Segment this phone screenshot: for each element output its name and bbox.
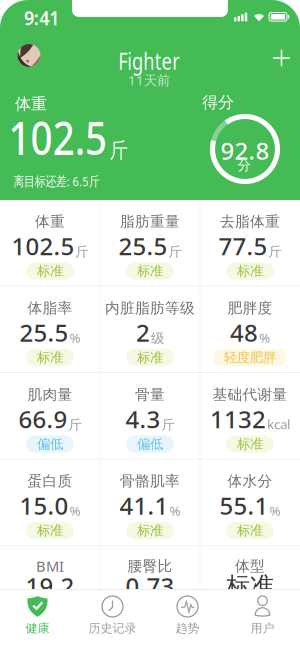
staticText: 斤 [75,244,88,260]
staticText: 历史记录 [88,621,136,636]
staticText: 肌肉量 [27,385,72,403]
staticText: 标准 [237,436,263,452]
button[interactable]: 肌肉量 [0,373,100,459]
button[interactable]: 蛋白质 [0,459,100,546]
button[interactable]: 用户 [225,589,300,650]
staticText: 斤 [161,417,174,433]
button[interactable]: 腰臀比 [100,546,200,650]
staticText: 斤 [168,244,181,260]
staticText: 9:41 [22,4,61,31]
staticText: 偏低 [37,436,63,452]
staticText: 骨量 [135,385,165,403]
staticText: 标准 [37,522,63,539]
staticText: 标准 [226,571,274,601]
button[interactable]: 去脂体重 [200,200,300,286]
staticText: 用户 [250,621,274,636]
staticText: 15.0 [19,490,68,521]
staticText: 4.3 [125,403,160,435]
staticText: 25.5 [118,230,167,262]
staticText: 55.1 [219,490,268,521]
staticText: 体重 [15,94,47,114]
staticText: BMI [36,556,64,576]
staticText: 分 [237,157,250,174]
staticText: 轻度肥胖 [224,349,276,366]
button[interactable]: 体水分 [200,459,300,546]
button[interactable]: 健康 [0,589,75,650]
button[interactable]: 体重 [0,200,100,286]
staticText: % [169,502,180,519]
staticText: 体水分 [227,472,272,490]
staticText: 骨骼肌率 [120,472,180,490]
staticText: 斤 [68,417,81,433]
staticText: 标准 [237,522,263,539]
staticText: 去脂体重 [220,212,280,230]
staticText: 得分 [202,93,234,112]
staticText: kcal [267,415,290,433]
button[interactable]: 肥胖度 [200,286,300,373]
staticText: 102.5 [11,230,74,262]
staticText: 标准 [137,263,163,279]
button[interactable] [17,44,40,67]
staticText: 标准 [37,349,63,366]
button[interactable]: 内脏脂肪等级 [100,286,200,373]
button[interactable]: BMI [0,546,100,650]
staticText: 25.5 [19,317,68,348]
staticText: Fighter [108,45,189,76]
staticText: 斤 [268,244,281,260]
staticText: 肥胖度 [227,299,272,317]
staticText: 级 [151,330,164,346]
staticText: 1132 [210,403,266,435]
staticText: 92.8 [220,135,269,166]
button[interactable]: 骨量 [100,373,200,459]
button[interactable] [273,49,290,67]
staticText: 体脂率 [27,299,72,317]
staticText: 基础代谢量 [212,385,287,403]
staticText: 66.9 [18,403,67,435]
staticText: 脂肪重量 [120,212,180,230]
staticText: % [69,502,80,519]
staticText: 健康 [25,621,49,636]
button[interactable]: 基础代谢量 [200,373,300,459]
staticText: 体型 [235,557,265,575]
staticText: 11天前 [128,71,170,89]
staticText: % [69,329,80,346]
staticText: 内脏脂肪等级 [105,299,195,317]
staticText: 标准 [137,522,163,539]
button[interactable]: 脂肪重量 [100,200,200,286]
staticText: 77.5 [218,230,267,262]
staticText: 标准 [137,349,163,366]
staticText: 48 [230,317,258,348]
staticText: 体重 [35,212,65,230]
button[interactable]: 体型 [200,546,300,650]
staticText: % [269,502,280,519]
staticText: % [259,329,270,346]
staticText: 2 [136,317,150,348]
staticText: 标准 [37,263,63,279]
staticText: 趋势 [175,621,199,636]
button[interactable]: 趋势 [150,589,225,650]
staticText: 0.73 [125,570,174,602]
button[interactable]: 骨骼肌率 [100,459,200,546]
button[interactable]: 历史记录 [75,589,150,650]
staticText: 离目标还差: 6.5斤 [4,172,109,190]
staticText: 102.5 [0,107,114,168]
button[interactable]: 体脂率 [0,286,100,373]
staticText: 斤 [117,137,138,164]
staticText: 标准 [237,263,263,279]
staticText: 偏低 [137,436,163,452]
staticText: 腰臀比 [127,557,172,575]
staticText: 19.2 [25,570,74,602]
staticText: 41.1 [119,490,168,521]
staticText: 蛋白质 [27,472,72,490]
